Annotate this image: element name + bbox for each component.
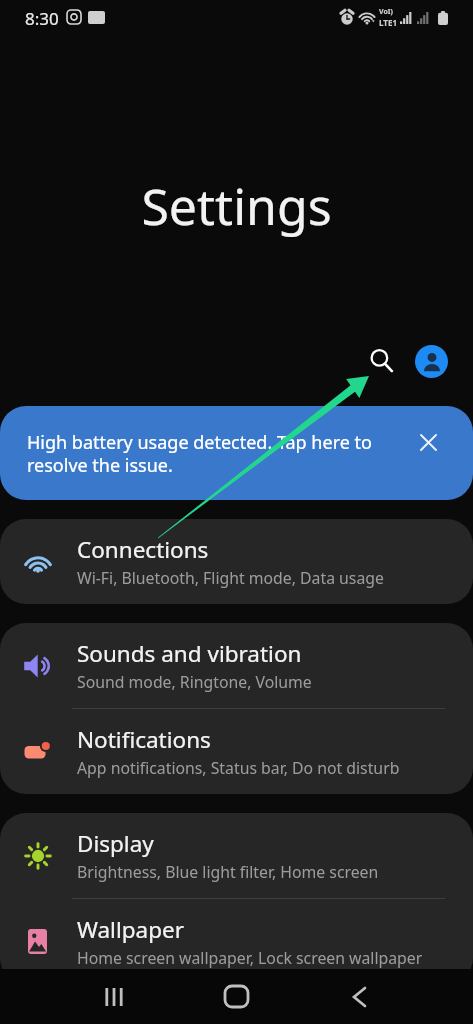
staticText: High battery usage detected. Tap here to… (27, 430, 401, 477)
staticText: Brightness, Blue light filter, Home scre… (77, 861, 379, 883)
staticText: Connections (77, 534, 209, 565)
staticText: Sounds and vibration (77, 638, 302, 669)
button[interactable]: Sounds and vibration (0, 623, 473, 708)
staticText: Home screen wallpaper, Lock screen wallp… (77, 947, 423, 969)
button[interactable]: High battery usage detected. Tap here to… (0, 406, 473, 500)
staticText: Wallpaper (77, 914, 184, 945)
button[interactable]: Wallpaper (0, 899, 473, 984)
button[interactable]: Home (175, 969, 298, 1024)
button[interactable]: Search (360, 339, 404, 383)
staticText: LTE1 (379, 17, 397, 28)
button[interactable]: Notifications (0, 709, 473, 794)
button[interactable]: Recents (52, 969, 175, 1024)
staticText: Display (77, 828, 154, 859)
button[interactable]: Dismiss (411, 425, 445, 459)
staticText: Settings (0, 172, 473, 240)
staticText: VoI) (379, 7, 393, 17)
staticText: Notifications (77, 724, 211, 755)
button[interactable]: Connections (0, 519, 473, 604)
staticText: Wi-Fi, Bluetooth, Flight mode, Data usag… (77, 567, 384, 589)
staticText: App notifications, Status bar, Do not di… (77, 757, 400, 779)
button[interactable]: Display (0, 813, 473, 898)
button[interactable]: Account (415, 345, 448, 378)
staticText: 8:30 (25, 7, 59, 30)
staticText: Sound mode, Ringtone, Volume (77, 671, 312, 693)
button[interactable]: Back (298, 969, 421, 1024)
